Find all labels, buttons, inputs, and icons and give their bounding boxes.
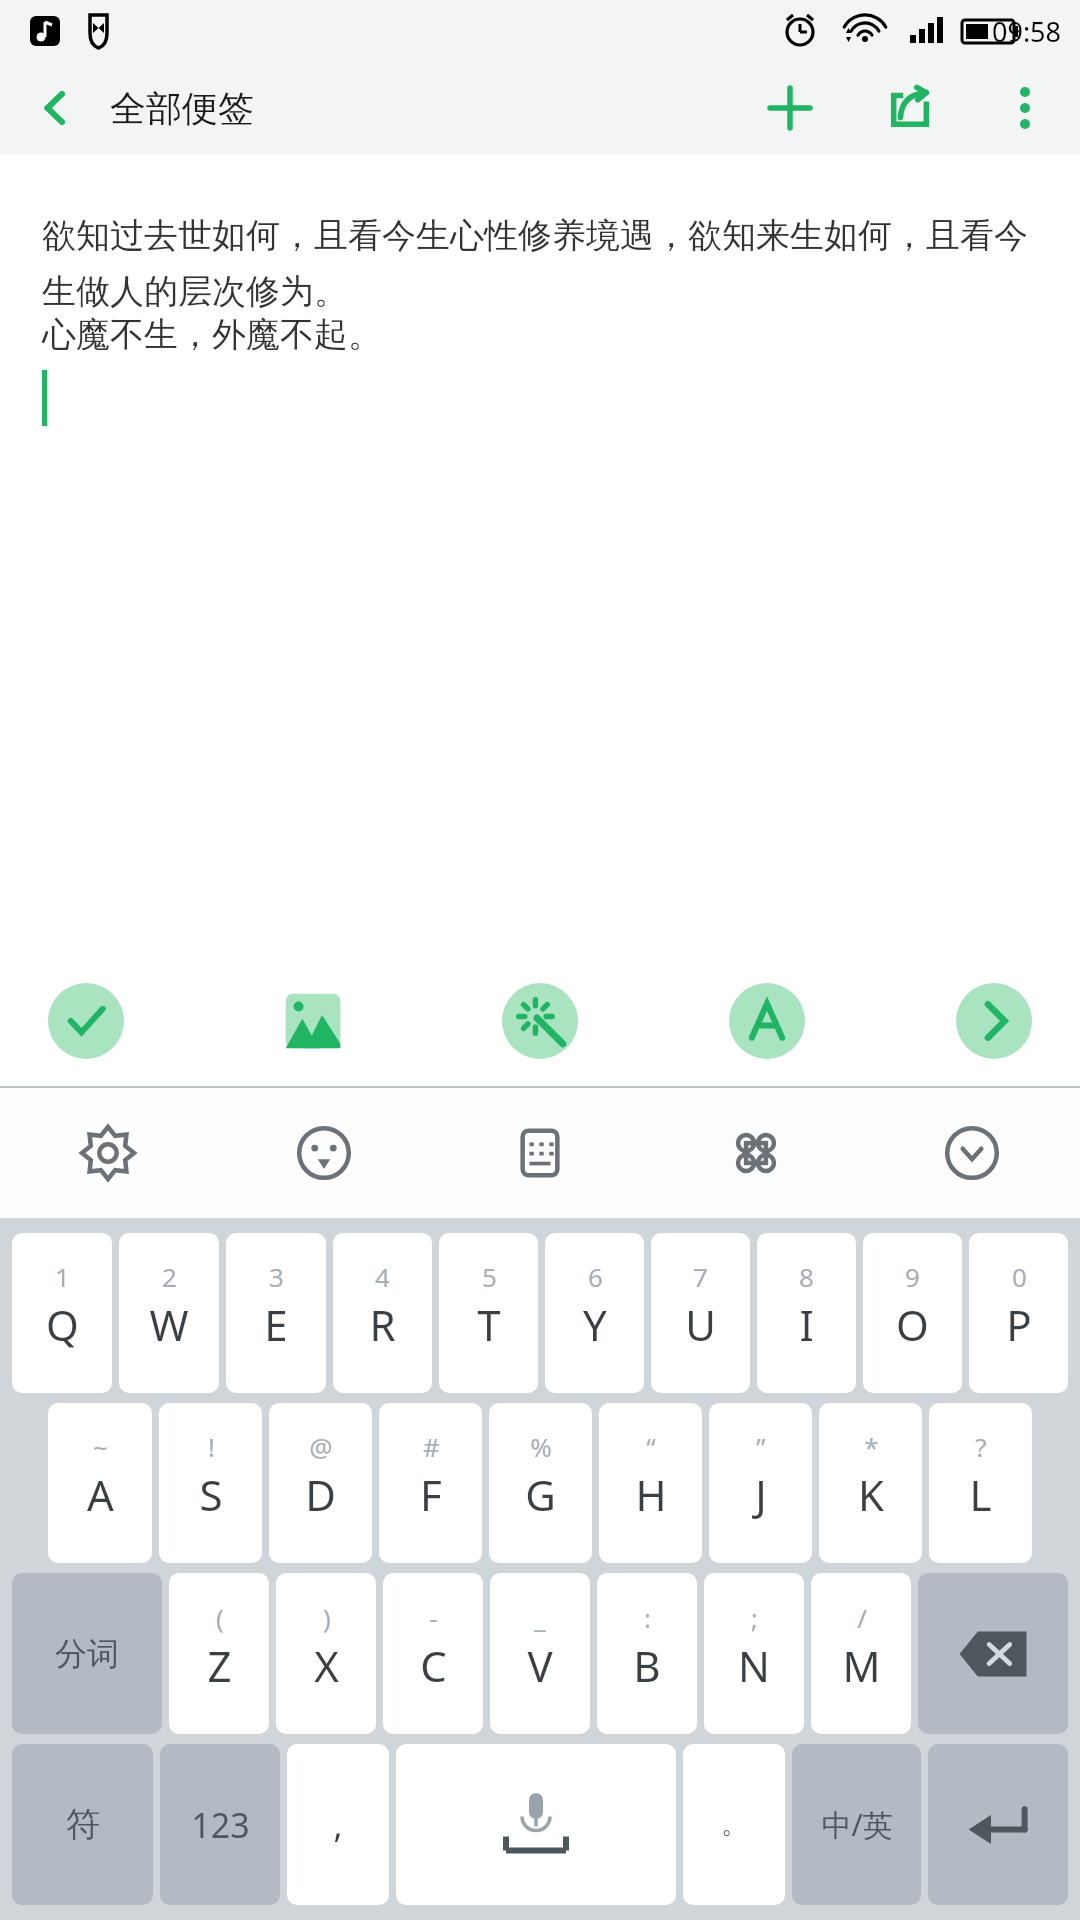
staticText: W [149,1296,189,1353]
staticText: 符 [66,1803,100,1846]
button[interactable]: Text style [721,975,813,1067]
staticText: U [685,1296,716,1353]
button[interactable]: Enter [928,1744,1068,1905]
button[interactable]: 0 [969,1233,1068,1393]
button[interactable]: 2 [119,1233,219,1393]
staticText: 4 [375,1259,390,1294]
staticText: T [477,1296,501,1353]
button[interactable]: 分词 [12,1573,162,1734]
staticText: * [864,1429,879,1464]
staticText: ? [975,1429,987,1464]
staticText: @ [309,1429,333,1464]
button[interactable]: Emoji [216,1088,432,1218]
button[interactable]: 9 [863,1233,962,1393]
staticText: 3 [269,1259,284,1294]
staticText: M [842,1637,881,1694]
button[interactable]: Add note [730,62,850,154]
button[interactable]: , [287,1744,389,1905]
staticText: V [527,1637,553,1694]
staticText: D [305,1466,336,1523]
button[interactable]: - [383,1573,483,1734]
staticText: H [635,1466,667,1523]
staticText: L [969,1466,992,1523]
staticText: , [333,1802,343,1848]
staticText: 123 [191,1802,250,1848]
staticText: / [857,1600,867,1635]
button[interactable]: 中/英 [792,1744,921,1905]
staticText: “ [646,1429,656,1464]
staticText: N [738,1637,770,1694]
button[interactable]: 符 [12,1744,153,1905]
button[interactable]: * [819,1403,922,1563]
staticText: R [369,1296,396,1353]
button[interactable]: 6 [545,1233,644,1393]
staticText: 8 [799,1259,814,1294]
staticText: # [423,1429,440,1464]
staticText: F [420,1466,442,1523]
button[interactable]: Hide keyboard [864,1088,1080,1218]
button[interactable]: 1 [12,1233,112,1393]
staticText: ” [756,1429,766,1464]
staticText: A [87,1466,114,1523]
button[interactable]: % [489,1403,592,1563]
staticText: S [199,1466,223,1523]
button[interactable]: 8 [757,1233,856,1393]
button[interactable]: Share [850,62,970,154]
staticText: X [314,1637,339,1694]
button[interactable]: ” [709,1403,812,1563]
button[interactable]: Keyboard layout [432,1088,648,1218]
staticText: 1 [55,1259,70,1294]
button[interactable]: 3 [226,1233,326,1393]
button[interactable]: ? [929,1403,1032,1563]
button[interactable]: ) [276,1573,376,1734]
button[interactable]: 5 [439,1233,538,1393]
button[interactable]: Insert image [267,975,359,1067]
staticText: - [429,1600,438,1635]
staticText: 分词 [55,1634,119,1674]
staticText: J [755,1466,767,1523]
button[interactable]: / [811,1573,911,1734]
button[interactable]: “ [599,1403,702,1563]
button[interactable]: 7 [651,1233,750,1393]
button[interactable]: @ [269,1403,372,1563]
staticText: E [264,1296,288,1353]
staticText: C [420,1637,447,1694]
staticText: ! [208,1429,215,1464]
staticText: 心魔不生，外魔不起。 [42,313,382,356]
staticText: ; [751,1600,758,1635]
button[interactable]: Keyboard settings [0,1088,216,1218]
staticText: 9 [905,1259,920,1294]
staticText: 6 [588,1259,603,1294]
button[interactable]: _ [490,1573,590,1734]
button[interactable]: ~ [48,1403,152,1563]
button[interactable]: ! [159,1403,262,1563]
staticText: I [799,1296,814,1353]
staticText: : [644,1600,651,1635]
staticText: ~ [93,1429,108,1464]
button[interactable]: More options [970,62,1080,154]
button[interactable]: Space [396,1744,676,1905]
button[interactable]: # [379,1403,482,1563]
button[interactable]: Back [0,62,110,154]
button[interactable]: 123 [160,1744,280,1905]
staticText: ( [216,1600,224,1635]
button[interactable]: Next [948,975,1040,1067]
staticText: B [633,1637,661,1694]
staticText: % [530,1429,552,1464]
staticText: 全部便签 [110,86,254,131]
button[interactable]: Done [40,975,132,1067]
button[interactable]: 4 [333,1233,432,1393]
button[interactable]: 。 [683,1744,785,1905]
button[interactable]: ; [704,1573,804,1734]
button[interactable]: ( [169,1573,269,1734]
staticText: K [858,1466,884,1523]
staticText: Q [46,1296,79,1353]
button[interactable]: : [597,1573,697,1734]
button[interactable]: Backspace [918,1573,1068,1734]
staticText: Z [207,1637,232,1694]
button[interactable]: Beautify [494,975,586,1067]
button[interactable]: Shortcuts [648,1088,864,1218]
staticText: 0 [1012,1259,1027,1294]
staticText: O [896,1296,929,1353]
staticText: 5 [482,1259,497,1294]
